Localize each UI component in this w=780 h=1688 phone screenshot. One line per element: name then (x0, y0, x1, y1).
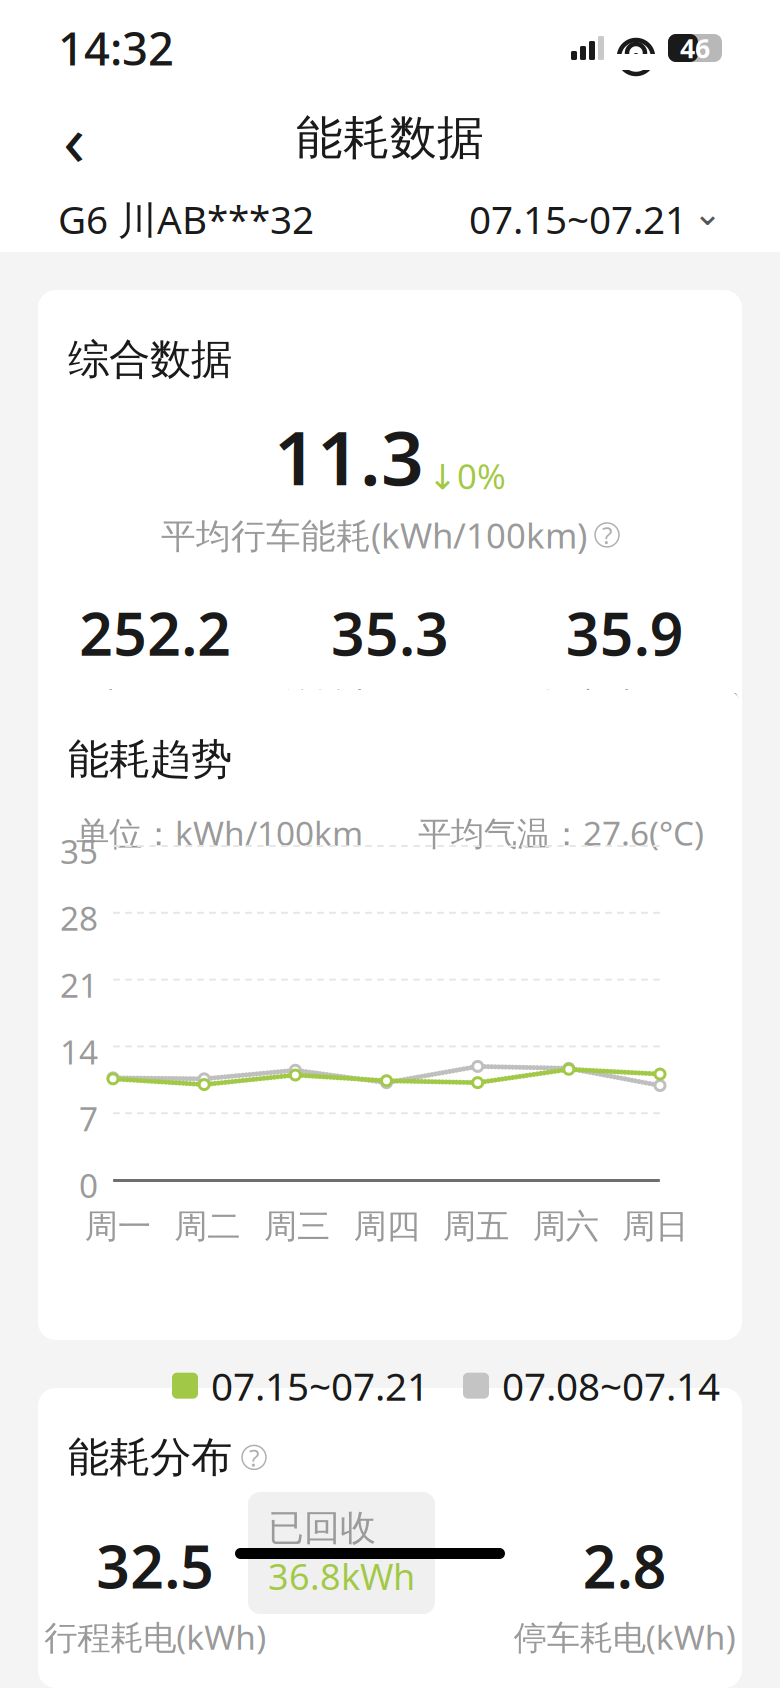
staticText: 28 (60, 896, 98, 940)
staticText: 已回收 (268, 1506, 376, 1550)
staticText: 平均气温：27.6(°C) (418, 811, 704, 855)
staticText: 0 (79, 1163, 98, 1207)
staticText: 7 (79, 1096, 98, 1140)
staticText: 周二 (174, 1206, 240, 1247)
staticText: 21 (60, 963, 98, 1007)
staticText: 07.15~07.21 (469, 193, 687, 245)
staticText: 周三 (264, 1206, 330, 1247)
staticText: ? (249, 1441, 259, 1473)
staticText: 单位：kWh/100km (76, 811, 363, 855)
staticText: 2.8 (583, 1527, 667, 1605)
staticText: 35.9 (566, 594, 684, 672)
staticText: ‹ (63, 90, 85, 186)
staticText: 周四 (353, 1206, 419, 1247)
staticText: ? (602, 519, 612, 551)
staticText: 能耗数据 (296, 109, 484, 167)
staticText: 07.08~07.14 (502, 1360, 720, 1411)
staticText: 07.15~07.21 (211, 1360, 429, 1411)
staticText: 46 (680, 30, 710, 66)
staticText: 周一 (85, 1206, 151, 1247)
button[interactable]: About average driving consumption (595, 523, 619, 547)
staticText: 252.2 (79, 594, 231, 672)
staticText: 综合数据 (68, 334, 232, 385)
staticText: ↓0% (428, 453, 506, 499)
staticText: 能耗分布 (68, 1432, 232, 1483)
staticText: 停车耗电(kWh) (514, 1615, 736, 1659)
staticText: 14:32 (58, 18, 174, 78)
staticText: 11.3 (274, 407, 424, 506)
staticText: 35.3 (331, 594, 449, 672)
staticText: 行程耗电(kWh) (44, 1615, 266, 1659)
staticText: 平均行车能耗(kWh/100km) (161, 512, 587, 558)
staticText: 能耗趋势 (68, 734, 232, 785)
staticText: ⌄ (693, 193, 722, 233)
button[interactable]: Back (38, 102, 110, 174)
staticText: 35 (60, 829, 98, 873)
staticText: 周日 (622, 1206, 688, 1247)
button[interactable]: 07.15~07.21 (469, 193, 722, 245)
staticText: 32.5 (96, 1527, 214, 1605)
button[interactable]: About energy distribution (242, 1445, 266, 1469)
staticText: G6 川AB***32 (58, 193, 314, 245)
staticText: 周六 (533, 1206, 599, 1247)
staticText: 周五 (443, 1206, 509, 1247)
staticText: 36.8kWh (268, 1552, 415, 1600)
staticText: 14 (60, 1029, 98, 1074)
